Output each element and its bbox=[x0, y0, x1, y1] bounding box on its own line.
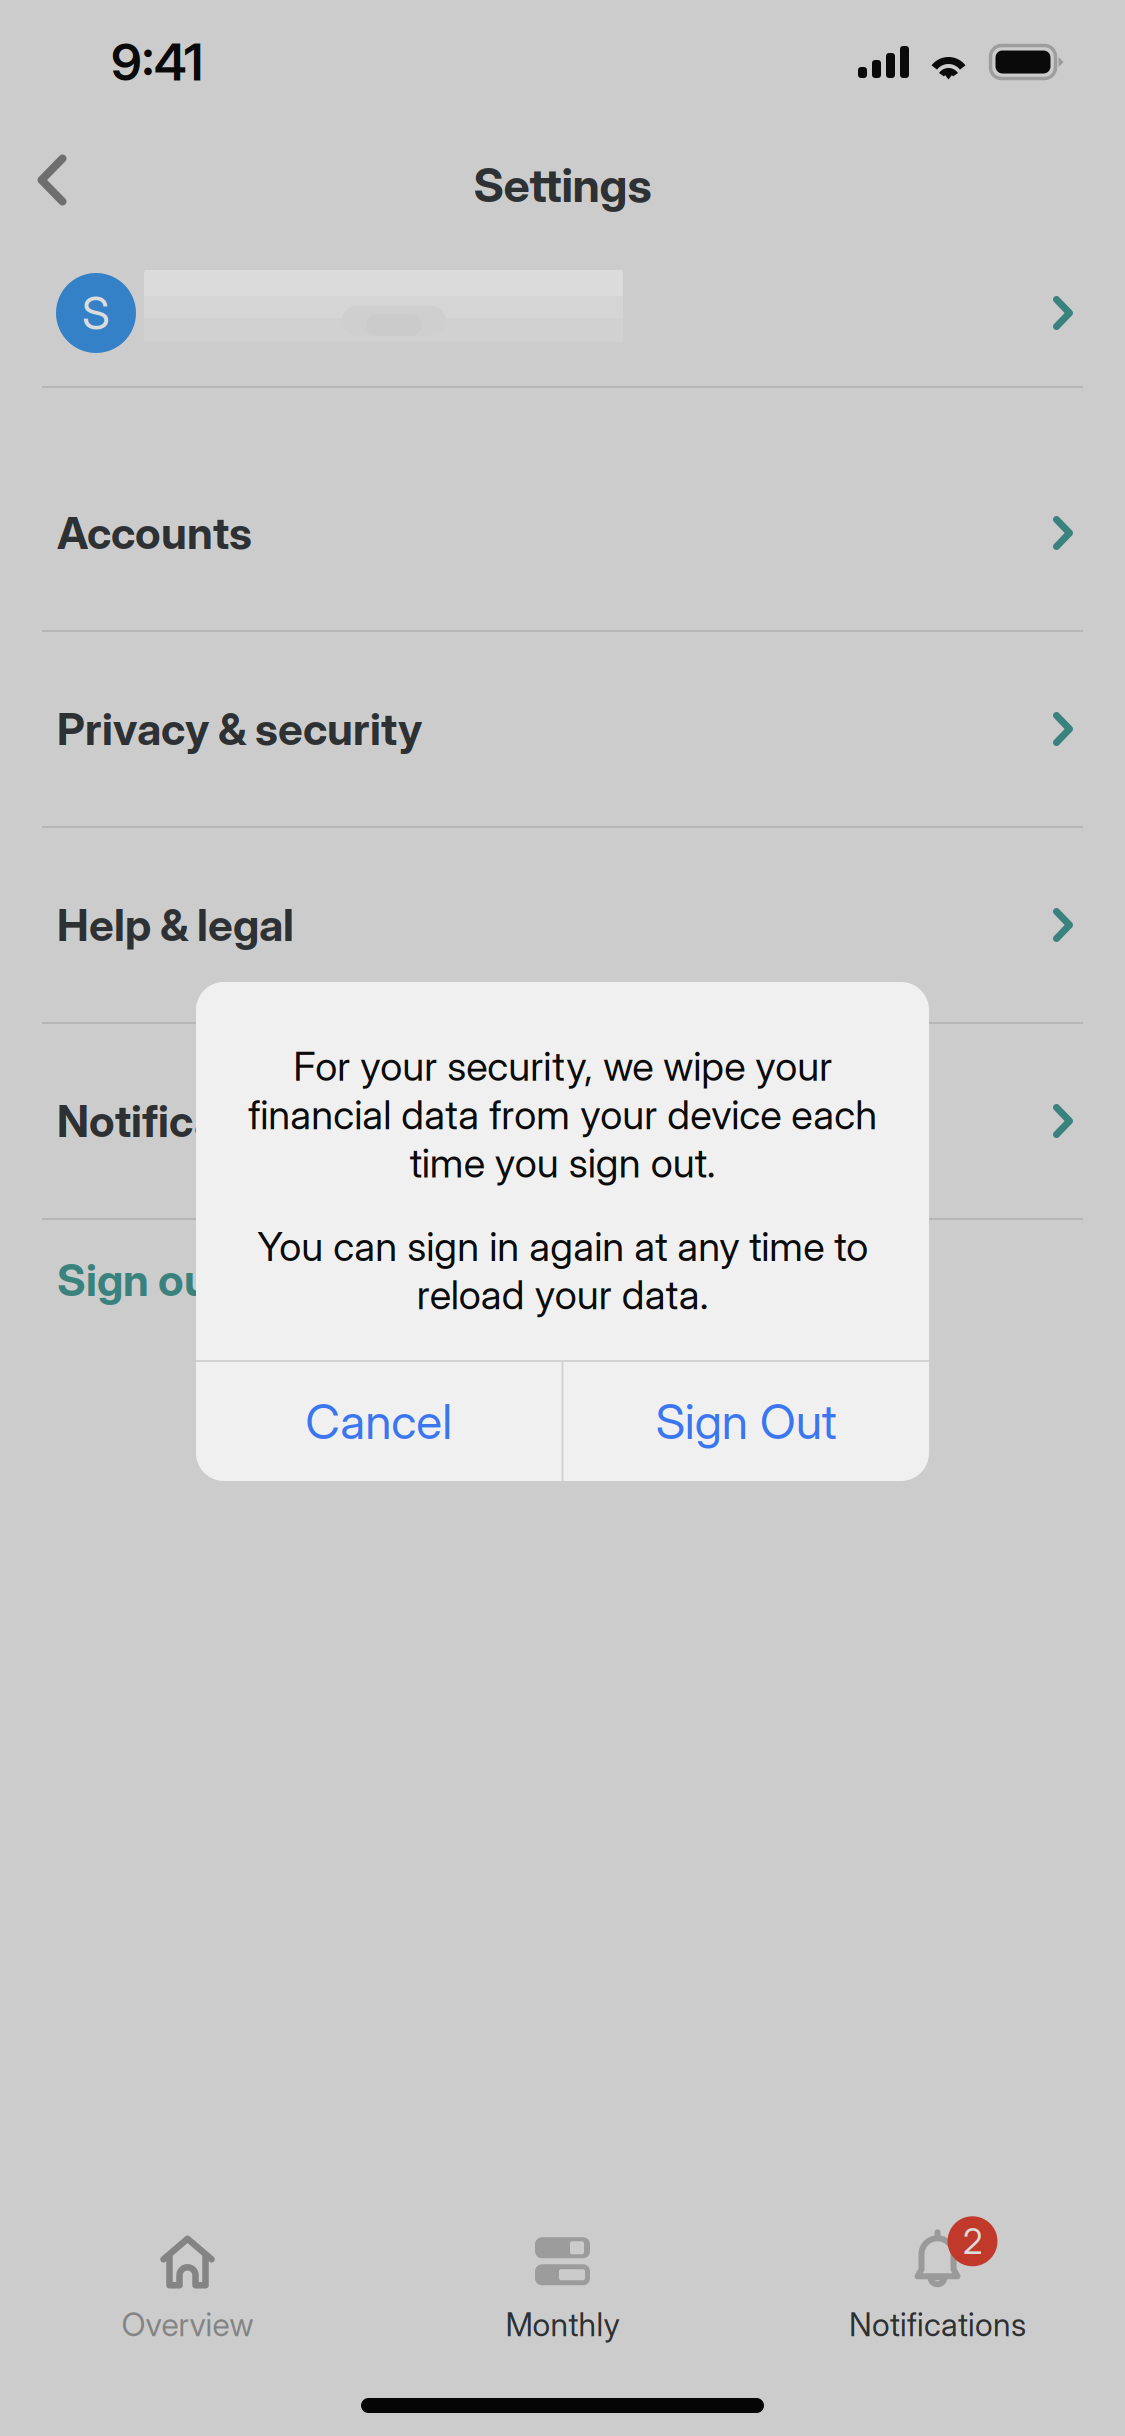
button[interactable]: Monthly bbox=[375, 2224, 750, 2344]
button[interactable]: Help & legal bbox=[0, 828, 1125, 1022]
staticText: 2 bbox=[963, 2220, 982, 2262]
staticText: Sign Out bbox=[656, 1392, 837, 1451]
staticText: Monthly bbox=[505, 2305, 619, 2344]
button[interactable]: Back bbox=[0, 130, 104, 240]
staticText: For your security, we wipe your financia… bbox=[248, 1042, 877, 1187]
button[interactable]: Overview bbox=[0, 2224, 375, 2344]
staticText: Help & legal bbox=[57, 898, 294, 952]
button[interactable]: 2 bbox=[750, 2224, 1125, 2344]
staticText: Settings bbox=[473, 157, 651, 213]
staticText: Overview bbox=[121, 2305, 253, 2344]
staticText: Cancel bbox=[305, 1392, 452, 1451]
button[interactable]: Accounts bbox=[0, 436, 1125, 630]
staticText: Privacy & security bbox=[57, 702, 422, 756]
staticText: S bbox=[82, 286, 110, 340]
button[interactable]: Cancel bbox=[196, 1362, 561, 1481]
staticText: Sign out bbox=[57, 1253, 226, 1307]
button[interactable]: Sign Out bbox=[563, 1362, 929, 1481]
button[interactable]: Privacy & security bbox=[0, 632, 1125, 826]
staticText: 9:41 bbox=[111, 31, 203, 93]
button[interactable]: S bbox=[0, 240, 1125, 386]
staticText: You can sign in again at any time to rel… bbox=[257, 1222, 868, 1319]
staticText: Notifications bbox=[849, 2305, 1026, 2344]
button[interactable]: Notifications bbox=[0, 1024, 1125, 1218]
button[interactable]: Sign out bbox=[0, 1220, 1125, 1340]
staticText: Accounts bbox=[57, 506, 252, 560]
staticText: Notifications bbox=[57, 1094, 320, 1148]
